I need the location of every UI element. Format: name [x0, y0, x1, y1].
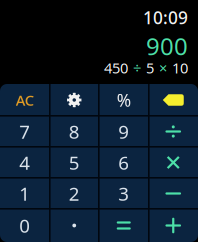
staticText: 0 — [19, 213, 30, 238]
button[interactable]: Plus — [148, 209, 198, 242]
staticText: 5 — [69, 150, 80, 175]
staticText: 9 — [118, 119, 129, 144]
button[interactable]: 4 — [0, 147, 49, 178]
button[interactable]: Decimal point — [49, 209, 99, 242]
button[interactable]: AC — [0, 84, 49, 116]
button[interactable]: 6 — [99, 147, 148, 178]
staticText: 4 — [19, 150, 30, 175]
button[interactable]: 8 — [49, 116, 99, 147]
button[interactable]: 0 — [0, 209, 49, 242]
button[interactable]: Multiply — [148, 147, 198, 178]
staticText: × — [159, 58, 167, 77]
staticText: 5 — [146, 58, 154, 77]
staticText: 900 — [146, 30, 188, 62]
button[interactable]: 5 — [49, 147, 99, 178]
button[interactable]: Divide — [148, 116, 198, 147]
staticText: 1 — [19, 181, 30, 206]
button[interactable]: 2 — [49, 178, 99, 209]
button[interactable]: 7 — [0, 116, 49, 147]
button[interactable]: 9 — [99, 116, 148, 147]
staticText: ÷ — [133, 58, 141, 77]
staticText: 450 — [104, 58, 128, 77]
button[interactable]: Settings — [49, 84, 99, 116]
staticText: 8 — [69, 119, 80, 144]
button[interactable]: Equals — [99, 209, 148, 242]
button[interactable]: 3 — [99, 178, 148, 209]
staticText: 10 — [172, 58, 188, 77]
button[interactable]: % — [99, 84, 148, 116]
button[interactable]: Minus — [148, 178, 198, 209]
staticText: 7 — [19, 119, 30, 144]
staticText: % — [117, 88, 131, 111]
staticText: 3 — [118, 181, 129, 206]
staticText: 6 — [118, 150, 129, 175]
staticText: 10:09 — [143, 6, 188, 29]
staticText: AC — [16, 90, 34, 110]
button[interactable]: Delete — [148, 84, 198, 116]
staticText: 2 — [69, 181, 80, 206]
button[interactable]: 1 — [0, 178, 49, 209]
